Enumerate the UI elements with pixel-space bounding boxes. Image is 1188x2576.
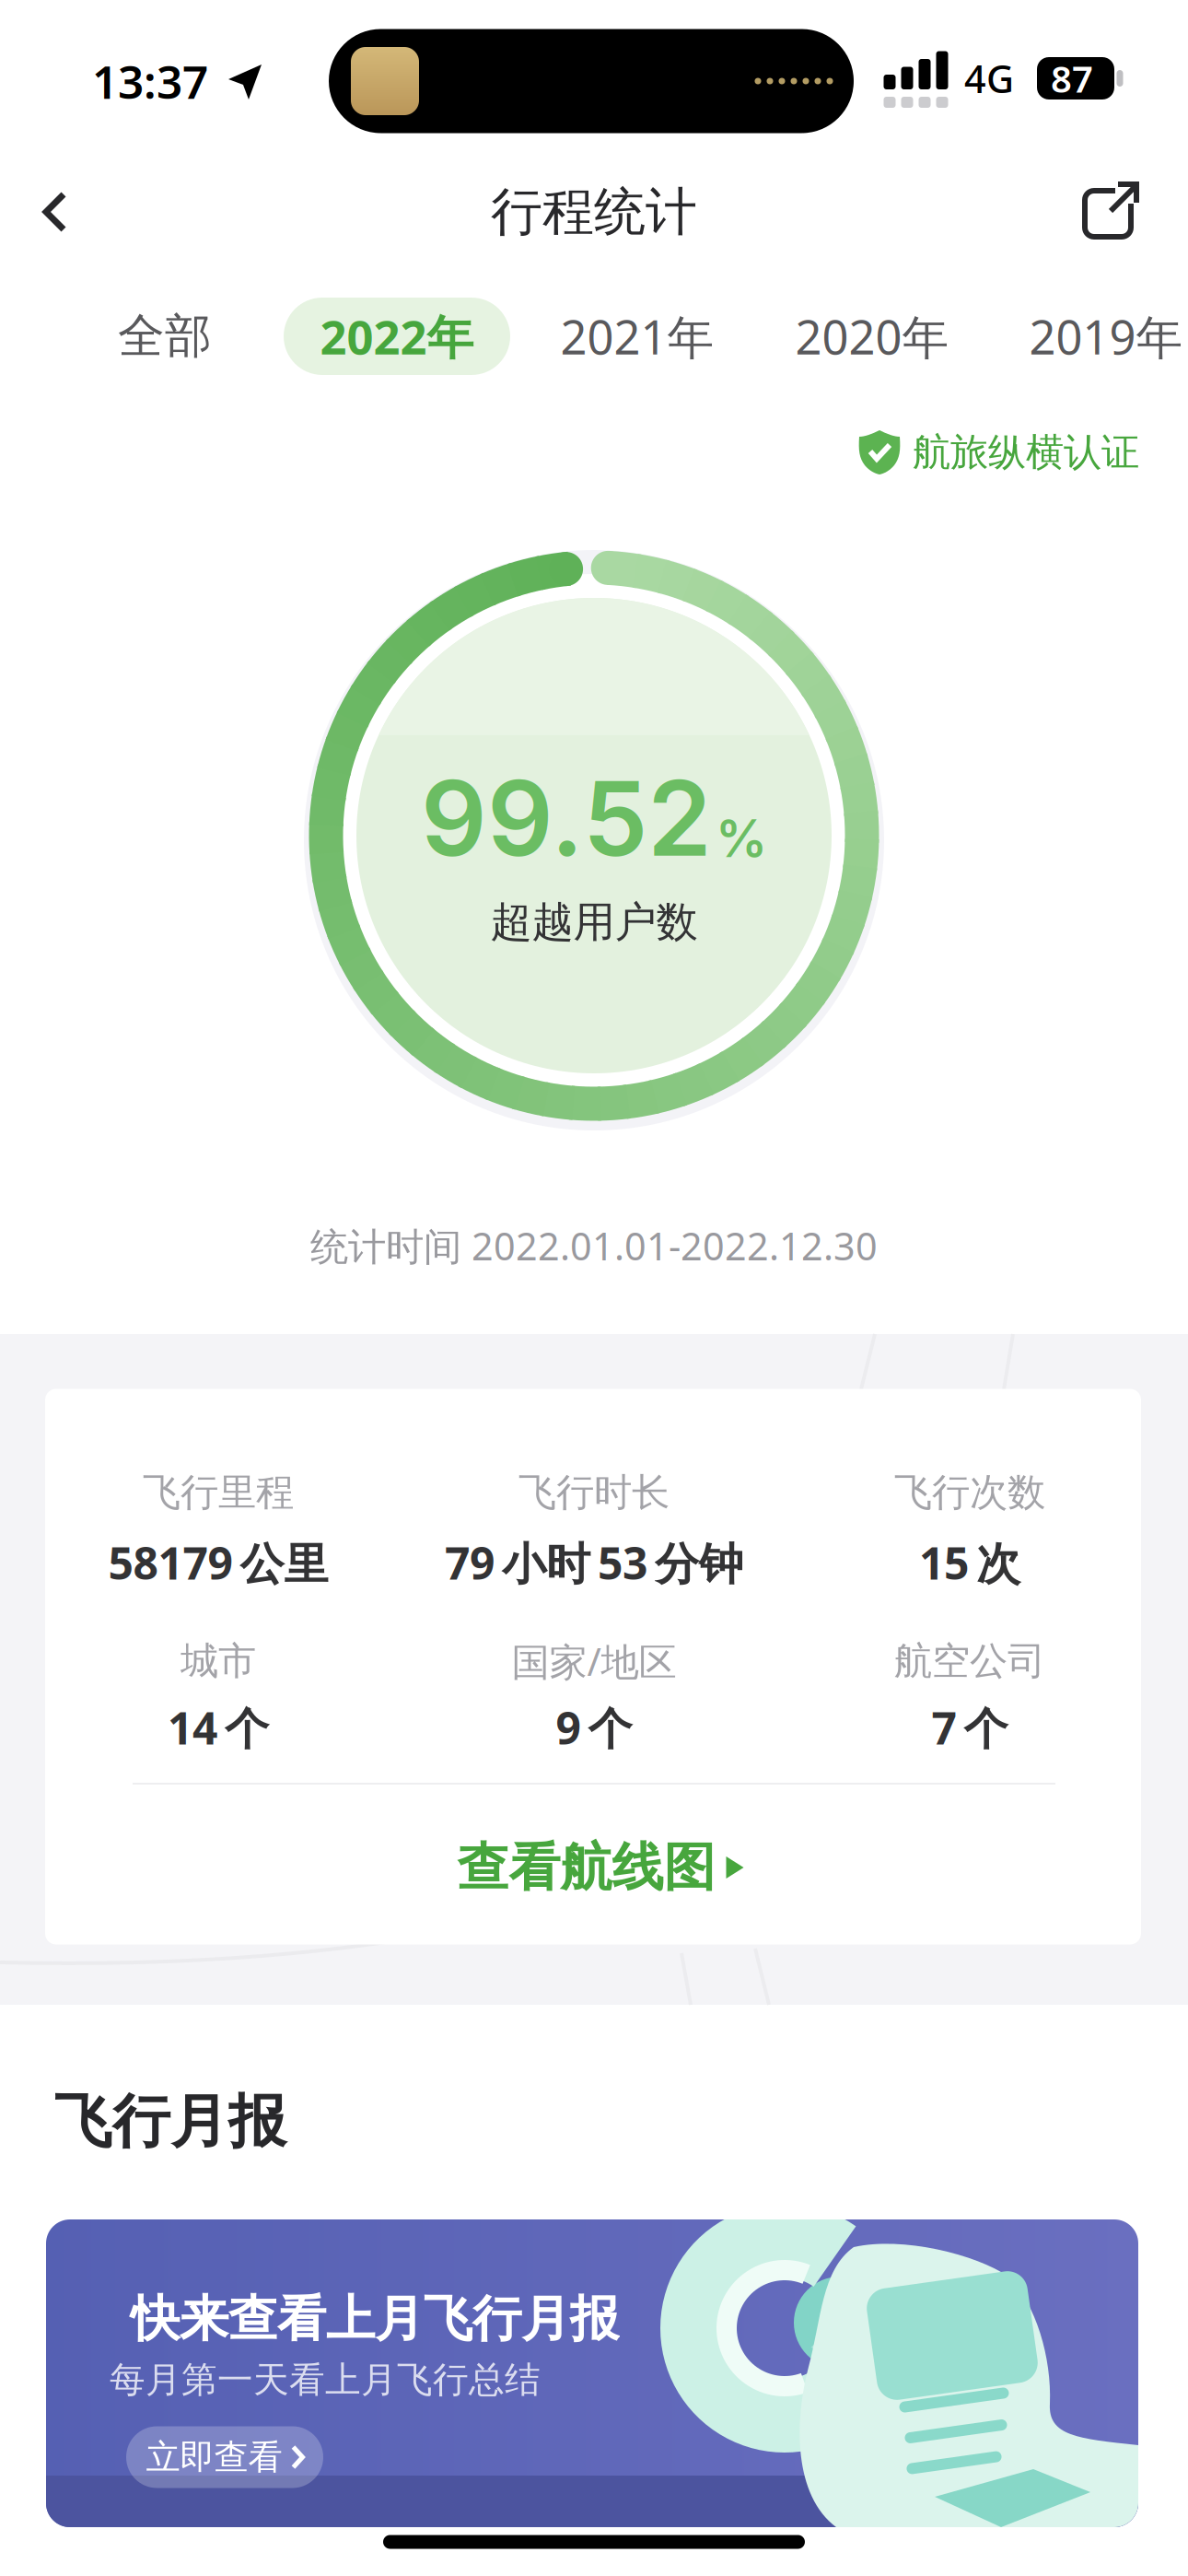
staticText: 15 次 [919, 1533, 1020, 1592]
button[interactable]: 2021年 [545, 298, 729, 375]
staticText: 行程统计 [491, 180, 697, 244]
staticText: 飞行次数 [894, 1469, 1045, 1516]
staticText: 2022年 [320, 305, 474, 367]
button[interactable]: 2020年 [780, 298, 964, 375]
staticText: 87 [1051, 54, 1093, 103]
staticText: 7 个 [932, 1698, 1008, 1757]
staticText: 统计时间 2022.01.01-2022.12.30 [310, 1220, 878, 1271]
button[interactable] [39, 190, 83, 234]
staticText: 2020年 [795, 305, 949, 367]
staticText: 2021年 [560, 305, 714, 367]
button[interactable]: 快来查看上月飞行月报 [46, 2219, 1138, 2527]
button[interactable]: 2019年 [1014, 298, 1188, 375]
staticText: 超越用户数 [490, 897, 698, 948]
staticText: 58179 公里 [108, 1533, 328, 1592]
staticText: 航旅纵横认证 [913, 429, 1139, 476]
button[interactable] [1081, 179, 1142, 240]
staticText: 4G [964, 53, 1014, 104]
staticText: % [716, 807, 767, 870]
staticText: 飞行里程 [143, 1469, 294, 1516]
button[interactable]: 全部 [96, 298, 234, 375]
staticText: 城市 [181, 1638, 256, 1685]
staticText: 查看航线图 [457, 1836, 715, 1899]
staticText: 航空公司 [894, 1638, 1045, 1685]
staticText: 国家/地区 [512, 1636, 676, 1686]
staticText: 飞行月报 [54, 2086, 286, 2157]
staticText: 9 个 [556, 1698, 632, 1757]
button[interactable]: 查看航线图 [430, 1831, 771, 1904]
staticText: 79 小时 53 分钟 [445, 1533, 743, 1592]
staticText: 99.52 [421, 756, 712, 881]
staticText: 2019年 [1029, 305, 1183, 367]
staticText: 14 个 [168, 1698, 269, 1757]
staticText: 全部 [118, 308, 212, 365]
button[interactable]: 2022年 [284, 298, 510, 375]
staticText: 13:37 [92, 51, 208, 111]
staticText: 立即查看 [146, 2436, 282, 2478]
staticText: 每月第一天看上月飞行总结 [110, 2358, 541, 2402]
staticText: 快来查看上月飞行月报 [131, 2289, 619, 2349]
staticText: 飞行时长 [518, 1469, 670, 1516]
